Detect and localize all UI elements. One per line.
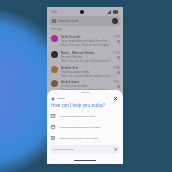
staticText: 12:03	[113, 35, 120, 39]
staticText: 9:41	[51, 10, 58, 14]
staticText: Search in mail	[58, 19, 79, 23]
staticText: 11:55	[113, 51, 120, 55]
staticText: Rose. , Marcus Drews	[61, 51, 95, 55]
staticText: Stock account ready	[61, 70, 90, 74]
button[interactable]: Account	[112, 18, 118, 24]
staticText: Enter a prompt here	[53, 148, 74, 151]
staticText: 9:32	[114, 80, 120, 84]
staticText: Show unread emails from today	[60, 114, 96, 117]
staticText: Well, they can not be fully functional b…	[61, 59, 112, 63]
staticText: 10:08	[113, 66, 120, 70]
button[interactable]: Get the status of my recent orders	[47, 132, 123, 143]
staticText: Gemini	[57, 97, 65, 100]
button[interactable]: Enter a prompt here	[50, 145, 120, 154]
staticText: Primary	[51, 27, 63, 31]
staticText: Tech Crunch	[61, 35, 81, 39]
button[interactable]: Tech Crunch	[47, 33, 123, 49]
staticText: Get the status of my recent orders	[60, 136, 99, 139]
button[interactable]: Rose. , Marcus Drews	[47, 49, 123, 64]
button[interactable]: Show unread emails from this week	[47, 121, 123, 132]
button[interactable]: Archer Eric	[47, 64, 123, 78]
staticText: Here's your invoice	[61, 84, 88, 88]
staticText: How can I help you today?	[51, 102, 106, 108]
staticText: André Lane	[61, 80, 80, 84]
button[interactable]: André Lane	[47, 78, 123, 92]
staticText: Show unread emails from this week	[60, 125, 100, 128]
other: Send	[114, 148, 117, 151]
button[interactable]: Close	[112, 95, 119, 102]
staticText: Please check the attachment below	[61, 88, 108, 92]
button[interactable]: Show unread emails from today	[47, 110, 123, 121]
button[interactable]: Open navigation menu	[49, 16, 121, 26]
staticText: Receive Money	[61, 55, 83, 59]
staticText: Reply this way - Here we are hooked. Tal…	[61, 43, 112, 47]
staticText: Hey! your invoice details together for y…	[61, 74, 112, 78]
staticText: Your newsletter is finally here for you	[61, 39, 112, 43]
staticText: Archer Eric	[61, 66, 79, 70]
